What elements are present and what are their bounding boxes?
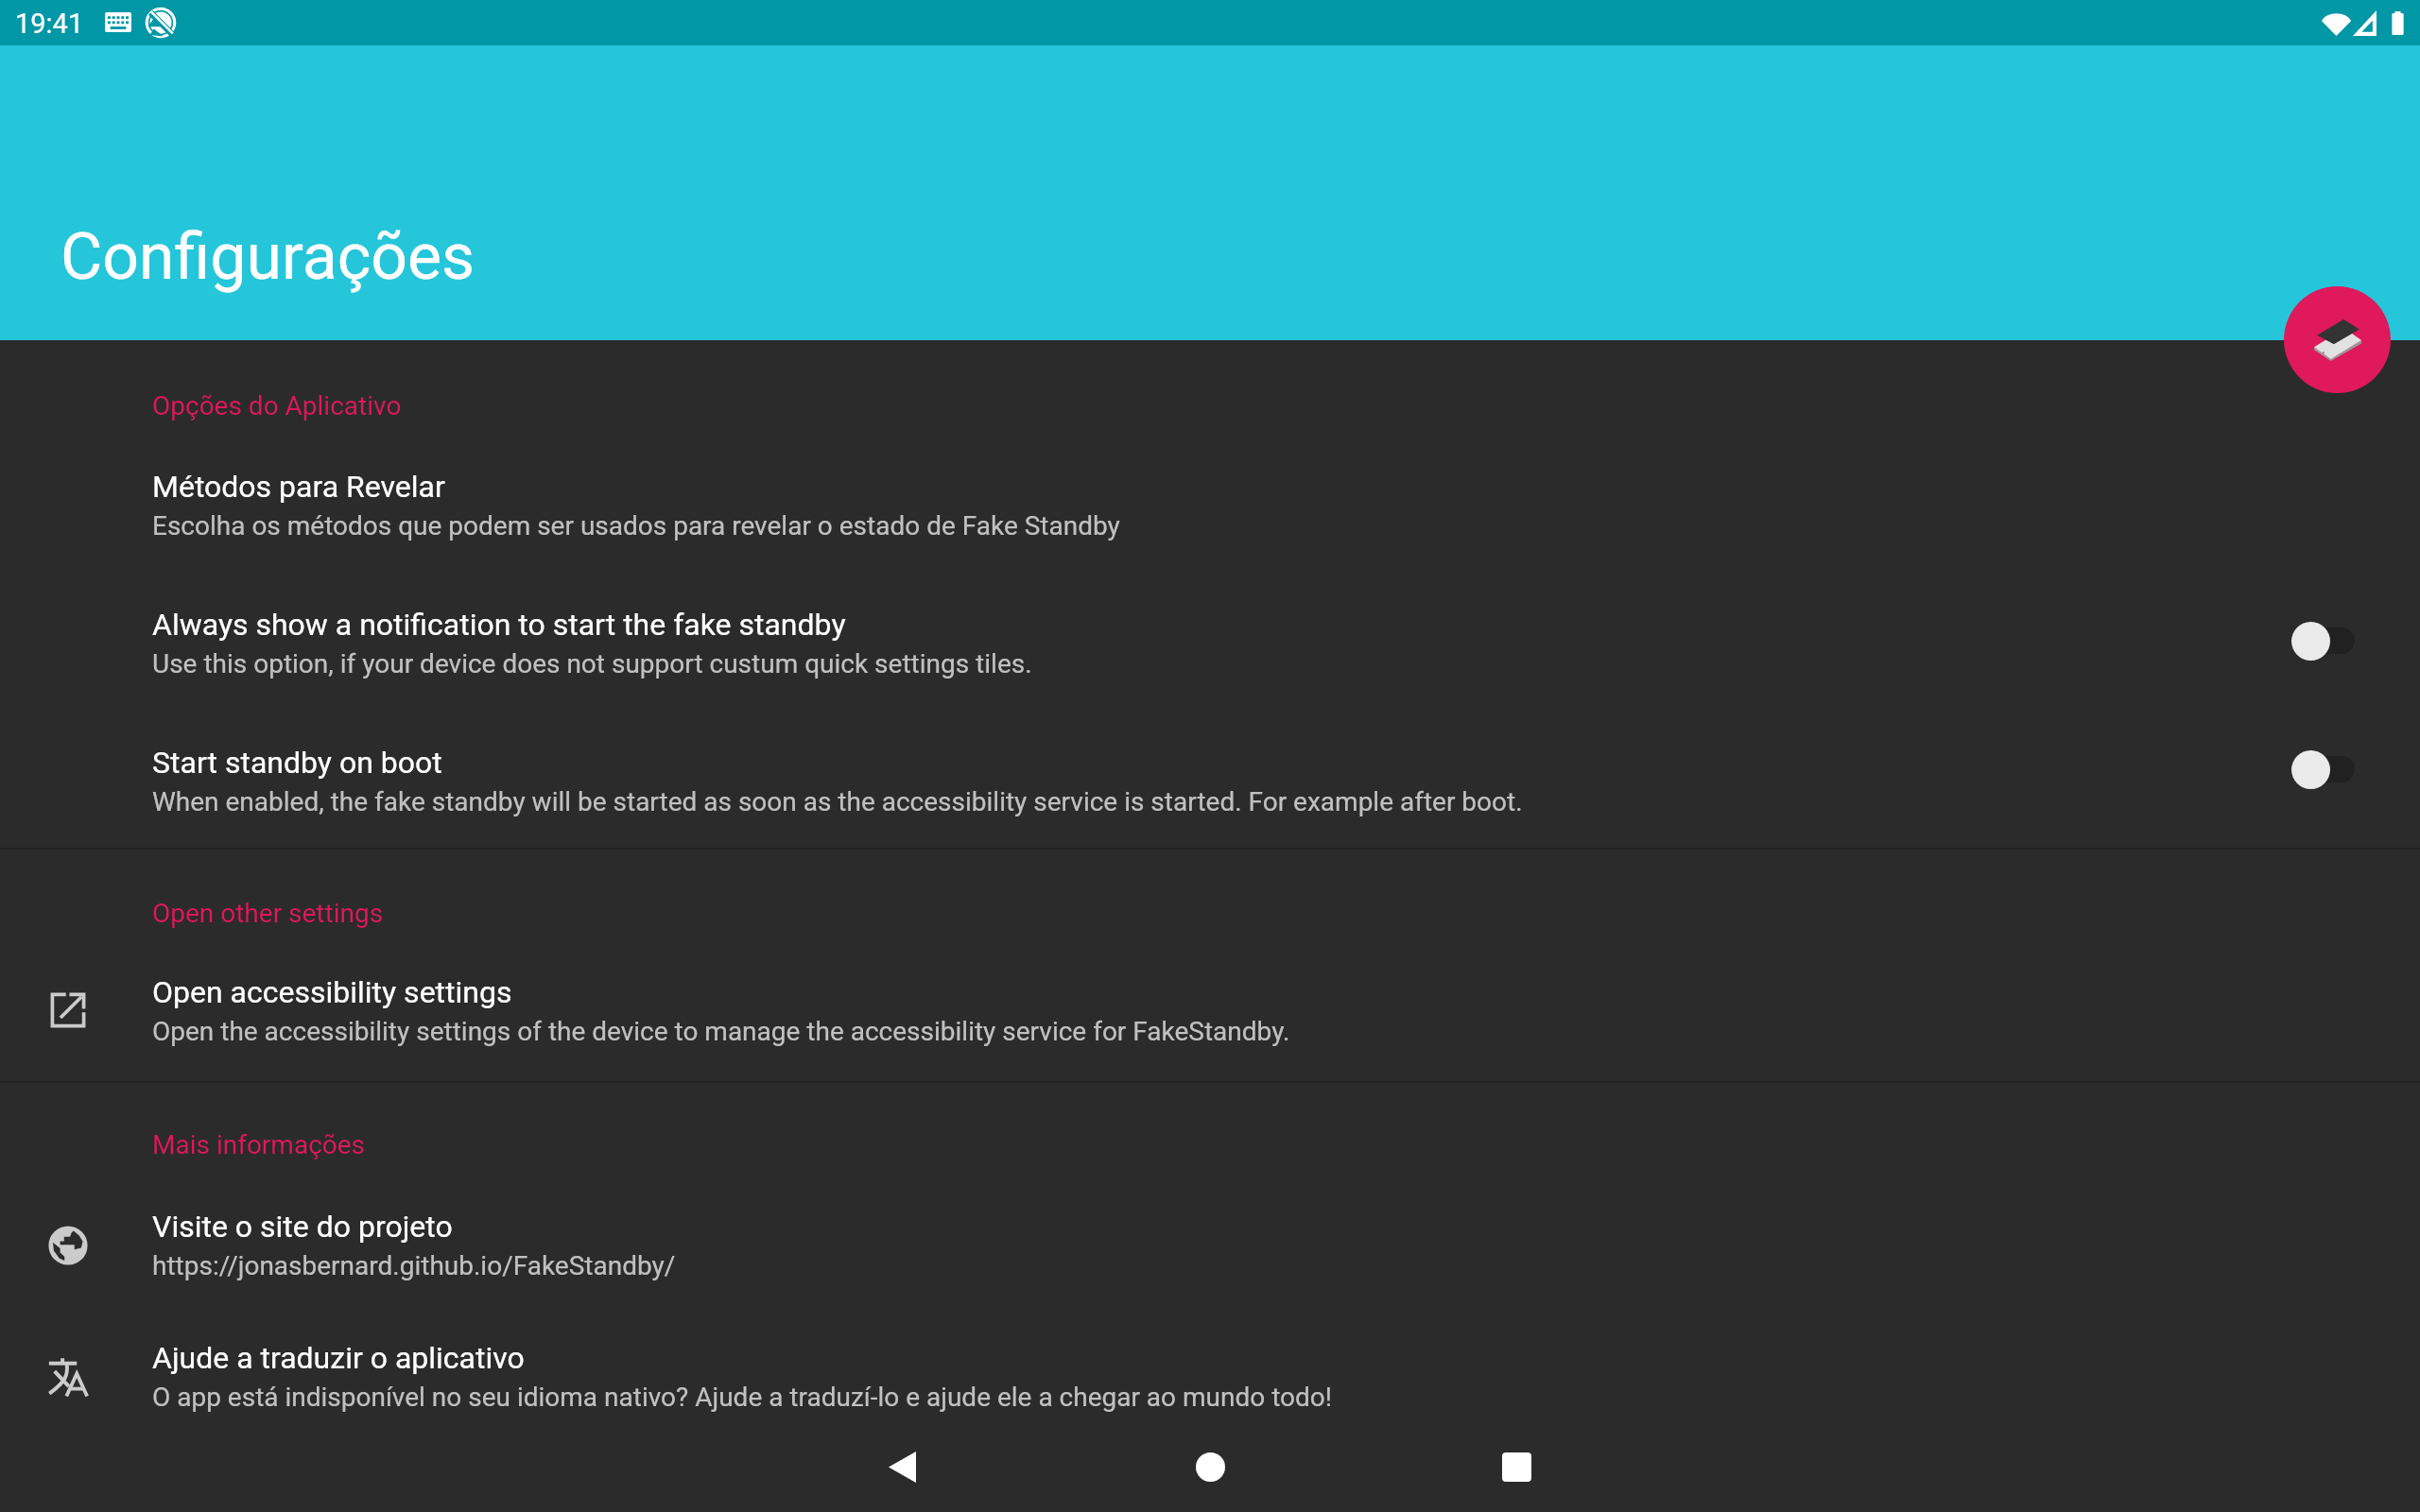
- staticText: Use this option, if your device does not…: [152, 648, 2326, 679]
- staticText: 19:41: [15, 8, 84, 40]
- button[interactable]: [0, 1180, 2420, 1303]
- staticText: Always show a notification to start the …: [152, 607, 2260, 643]
- button[interactable]: Home: [1161, 1417, 1259, 1512]
- staticText: Open the accessibility settings of the d…: [152, 1016, 2326, 1047]
- button[interactable]: [0, 1312, 2420, 1414]
- button[interactable]: [0, 578, 2420, 701]
- button[interactable]: Toggle setting: [2261, 605, 2384, 677]
- staticText: https://jonasbernard.github.io/FakeStand…: [152, 1250, 2326, 1281]
- staticText: Open accessibility settings: [152, 974, 2260, 1010]
- button[interactable]: [0, 946, 2420, 1069]
- staticText: Ajude a traduzir o aplicativo: [152, 1340, 2260, 1376]
- button[interactable]: Recent apps: [1467, 1417, 1565, 1512]
- button[interactable]: [0, 440, 2420, 563]
- staticText: Start standby on boot: [152, 745, 2260, 781]
- button[interactable]: Toggle setting: [2261, 733, 2384, 805]
- button[interactable]: Back: [853, 1417, 951, 1512]
- staticText: Visite o site do projeto: [152, 1209, 2260, 1245]
- staticText: Mais informações: [152, 1129, 366, 1160]
- staticText: When enabled, the fake standby will be s…: [152, 786, 2326, 817]
- staticText: Open other settings: [152, 898, 384, 929]
- staticText: Configurações: [60, 219, 475, 295]
- button[interactable]: Start fake standby: [2284, 286, 2391, 393]
- button[interactable]: [0, 716, 2420, 839]
- staticText: Opções do Aplicativo: [152, 390, 402, 421]
- staticText: O app está indisponível no seu idioma na…: [152, 1382, 2326, 1413]
- staticText: Métodos para Revelar: [152, 469, 2260, 505]
- staticText: Escolha os métodos que podem ser usados …: [152, 510, 2326, 541]
